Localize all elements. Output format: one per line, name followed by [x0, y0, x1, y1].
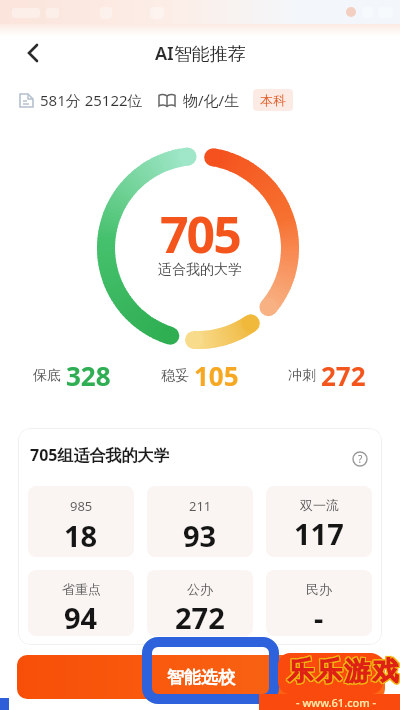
staticText: 适合我的大学 [158, 261, 242, 279]
staticText: 93 [183, 516, 217, 555]
staticText: 94 [64, 598, 98, 636]
staticText: 581分 25122位 [40, 90, 143, 110]
staticText: 智能选校 [167, 667, 235, 688]
staticText: 乐乐游戏 [286, 654, 400, 687]
staticText: 乐乐游戏 [287, 654, 400, 687]
staticText: 18 [64, 516, 98, 555]
button[interactable]: 民办 [266, 570, 372, 636]
button[interactable] [16, 35, 52, 71]
staticText: 冲刺 [288, 367, 316, 385]
staticText: 272 [321, 358, 366, 393]
staticText: 705 [160, 200, 240, 254]
button[interactable]: 双一流 [266, 486, 372, 557]
staticText: 乐乐游戏 [285, 656, 399, 689]
staticText: 117 [294, 514, 344, 553]
staticText: 物/化/生 [183, 90, 240, 110]
button[interactable]: 省重点 [28, 570, 134, 636]
button[interactable]: 985 [28, 486, 134, 557]
staticText: 乐乐游戏 [285, 655, 399, 688]
staticText: ? [358, 452, 363, 466]
staticText: - [314, 598, 324, 636]
button[interactable]: 211 [147, 486, 253, 557]
staticText: AI智能推荐 [155, 41, 246, 66]
button[interactable]: 公办 [147, 570, 253, 636]
staticText: 稳妥 [161, 367, 189, 385]
staticText: 双一流 [300, 497, 339, 513]
staticText: 985 [70, 497, 93, 515]
button[interactable]: ? [351, 450, 369, 468]
staticText: 省重点 [62, 581, 101, 597]
staticText: 乐乐游戏 [285, 654, 399, 687]
staticText: 乐乐游戏 [287, 655, 400, 688]
staticText: 本科 [260, 92, 286, 108]
staticText: 保底 [33, 367, 61, 385]
staticText: 公办 [187, 581, 213, 597]
staticText: 272 [175, 598, 225, 636]
staticText: 105 [194, 358, 239, 393]
staticText: 705组适合我的大学 [30, 444, 170, 466]
staticText: 328 [66, 358, 111, 393]
staticText: 乐乐游戏 [286, 656, 400, 689]
staticText: 211 [189, 497, 212, 515]
staticText: 民办 [306, 581, 332, 597]
staticText: 乐乐游戏 [287, 656, 400, 689]
staticText: 乐乐游戏 [286, 655, 400, 688]
button[interactable]: 智能选校 [17, 655, 385, 699]
staticText: - www.61.com - [296, 695, 377, 710]
